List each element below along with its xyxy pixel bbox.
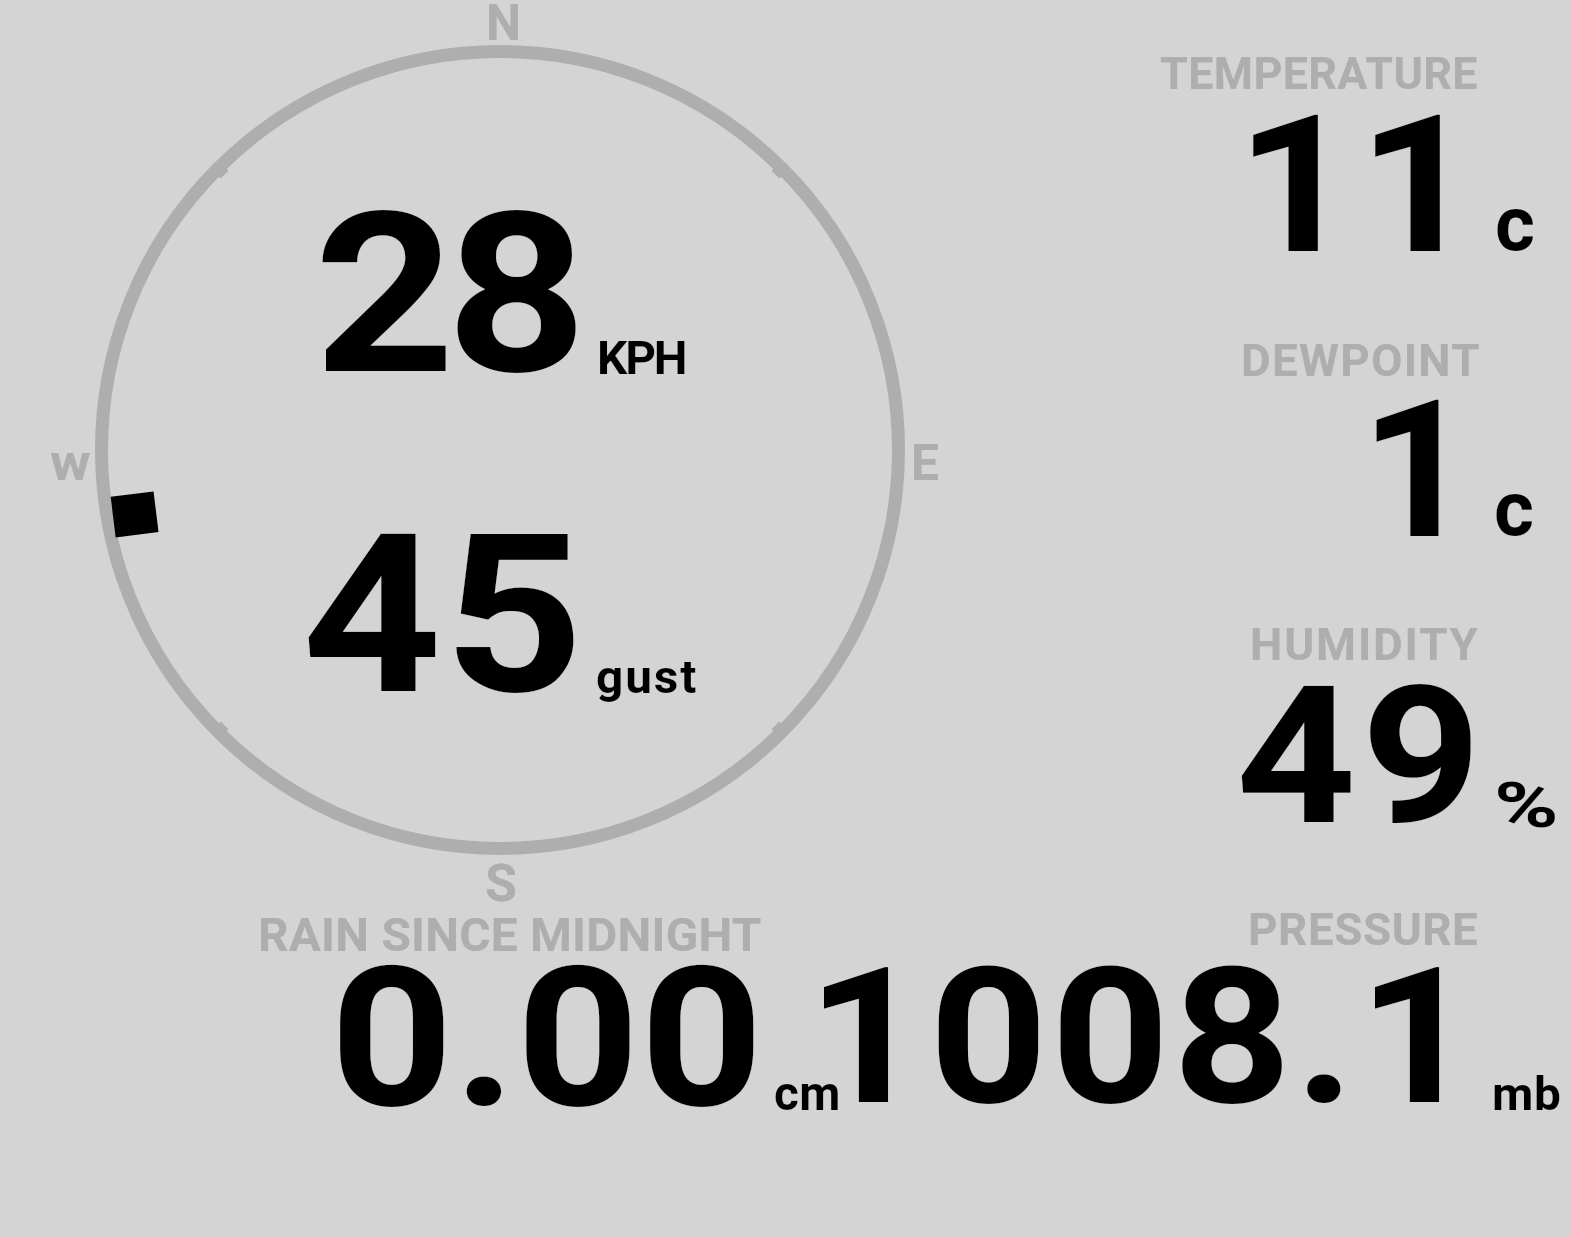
button[interactable]: PRESSURE	[790, 895, 1571, 1125]
staticText: PRESSURE	[1248, 905, 1479, 956]
staticText: %	[1494, 769, 1560, 842]
button[interactable]: 45	[300, 484, 700, 709]
button[interactable]: DEWPOINT	[1130, 326, 1571, 556]
staticText: KPH	[597, 332, 686, 385]
staticText: 1	[1360, 359, 1476, 582]
staticText: c	[1494, 464, 1534, 554]
button[interactable]: 28	[300, 160, 700, 390]
staticText: N	[486, 0, 522, 52]
staticText: 0.00	[330, 924, 764, 1153]
staticText: DEWPOINT	[1241, 336, 1481, 387]
staticText: 28	[314, 164, 579, 394]
staticText: mb	[1492, 1068, 1562, 1121]
staticText: gust	[596, 651, 699, 704]
staticText: 1008.1	[807, 927, 1480, 1148]
staticText: HUMIDITY	[1250, 620, 1480, 671]
button[interactable]: HUMIDITY	[1130, 610, 1571, 840]
button[interactable]: TEMPERATURE	[1130, 40, 1571, 270]
staticText: E	[911, 434, 939, 492]
staticText: w	[50, 433, 91, 493]
staticText: 45	[302, 486, 586, 711]
staticText: c	[1495, 179, 1535, 269]
staticText: TEMPERATURE	[1160, 49, 1478, 100]
staticText: 49	[1236, 645, 1487, 868]
staticText: 11	[1236, 74, 1480, 297]
staticText: S	[485, 853, 517, 914]
staticText: cm	[774, 1066, 841, 1122]
button[interactable]: RAIN SINCE MIDNIGHT	[250, 895, 850, 1125]
staticText: RAIN SINCE MIDNIGHT	[258, 909, 762, 962]
button[interactable]: Wind direction compass	[95, 45, 905, 855]
